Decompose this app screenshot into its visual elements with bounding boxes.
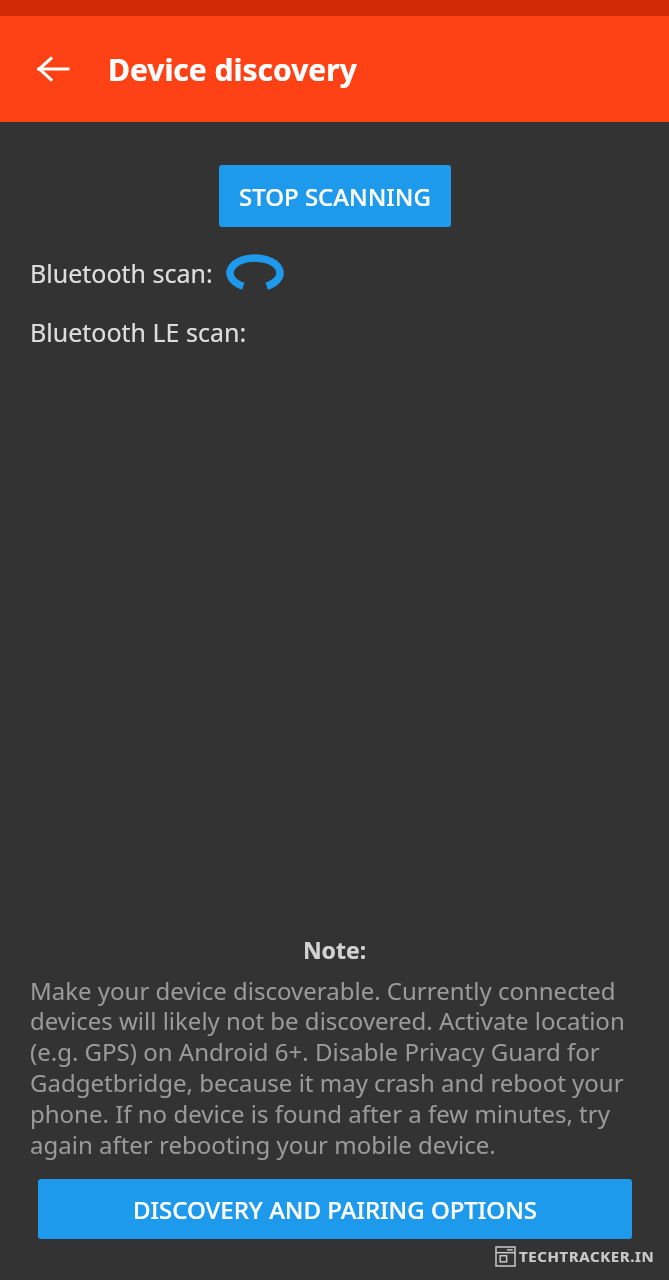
staticText: Make your device discoverable. Currently… [30,974,639,1161]
button[interactable]: Back [24,40,82,98]
staticText: Device discovery [108,49,357,90]
staticText: Bluetooth LE scan: [30,315,247,349]
staticText: Note: [0,934,669,965]
staticText: TECHTRACKER.IN [519,1246,655,1266]
staticText: STOP SCANNING [239,180,431,213]
button[interactable]: DISCOVERY AND PAIRING OPTIONS [38,1179,632,1239]
staticText: Bluetooth scan: [30,256,213,290]
button[interactable]: STOP SCANNING [219,165,451,227]
staticText: DISCOVERY AND PAIRING OPTIONS [133,1193,537,1226]
